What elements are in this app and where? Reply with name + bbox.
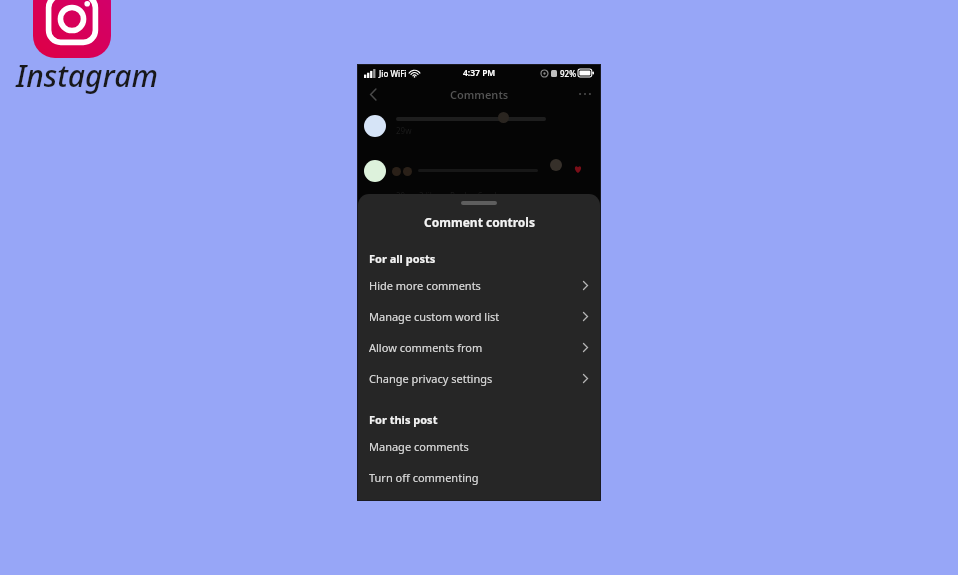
staticText: Jio WiFi <box>379 68 407 79</box>
staticText: Instagram <box>16 55 158 96</box>
staticText: 92% <box>560 68 576 79</box>
button[interactable]: Allow comments from <box>358 332 600 363</box>
staticText: Hide more comments <box>369 278 481 293</box>
button[interactable]: Turn off commenting <box>358 462 600 493</box>
button[interactable]: Back <box>363 84 383 104</box>
button[interactable]: Hide more comments <box>358 270 600 301</box>
button[interactable]: Manage comments <box>358 431 600 462</box>
staticText: 4:37 PM <box>463 67 496 79</box>
staticText: Reply <box>450 190 471 201</box>
staticText: Comments <box>450 87 509 102</box>
staticText: For all posts <box>369 251 436 266</box>
staticText: Comment controls <box>424 214 535 230</box>
button[interactable]: Change privacy settings <box>358 363 600 394</box>
staticText: 29w <box>396 190 412 201</box>
staticText: Manage comments <box>369 439 469 454</box>
staticText: For this post <box>369 412 438 427</box>
button[interactable]: Manage custom word list <box>358 301 600 332</box>
staticText: 29w <box>396 125 412 136</box>
staticText: Manage custom word list <box>369 309 500 324</box>
staticText: Send <box>478 190 497 201</box>
button[interactable]: More options <box>575 84 595 104</box>
staticText: Change privacy settings <box>369 371 493 386</box>
staticText: 3 likes <box>419 190 443 201</box>
other: Instagram logo <box>33 0 111 58</box>
staticText: Allow comments from <box>369 340 483 355</box>
staticText: Turn off commenting <box>369 470 479 485</box>
